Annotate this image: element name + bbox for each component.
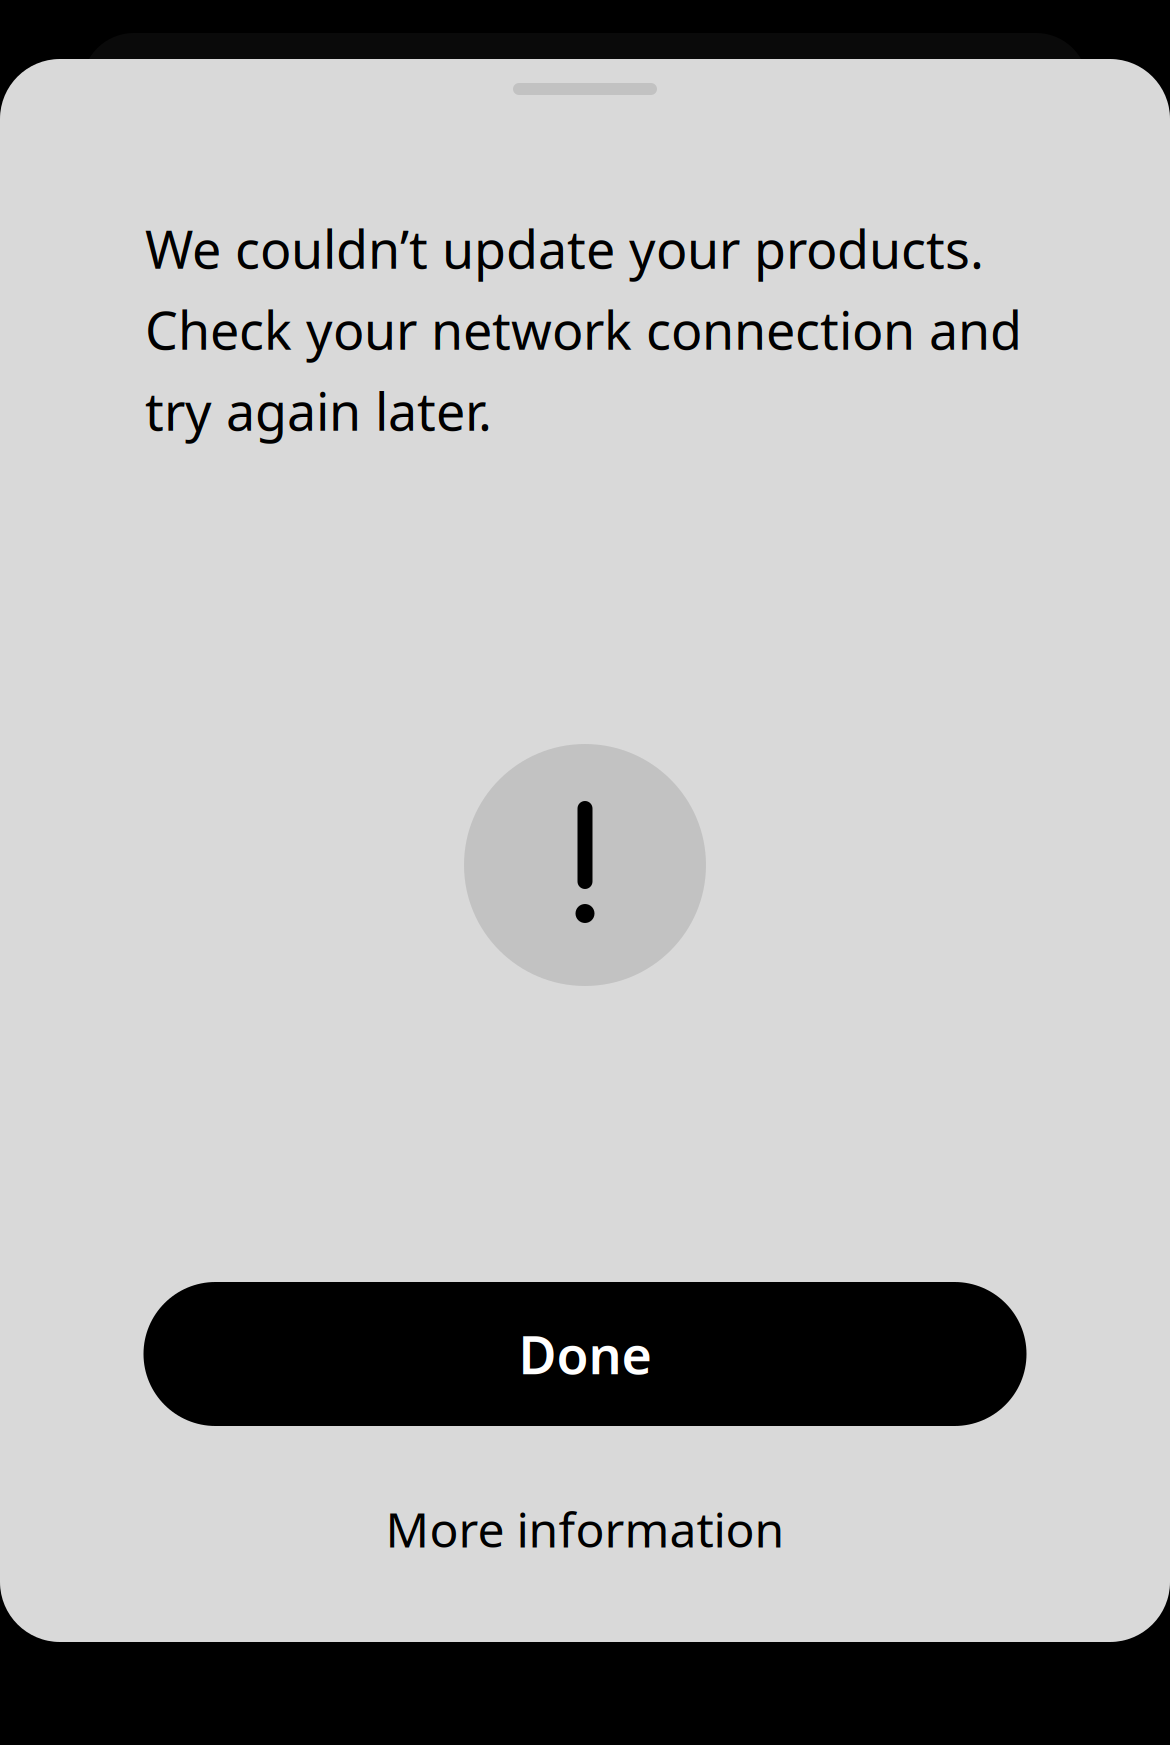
button[interactable]: More information [143, 1454, 1026, 1604]
staticText: Done [518, 1319, 651, 1389]
staticText: More information [385, 1497, 784, 1561]
staticText: We couldn’t update your products. Check … [145, 214, 1022, 445]
button[interactable]: Done [143, 1282, 1026, 1426]
